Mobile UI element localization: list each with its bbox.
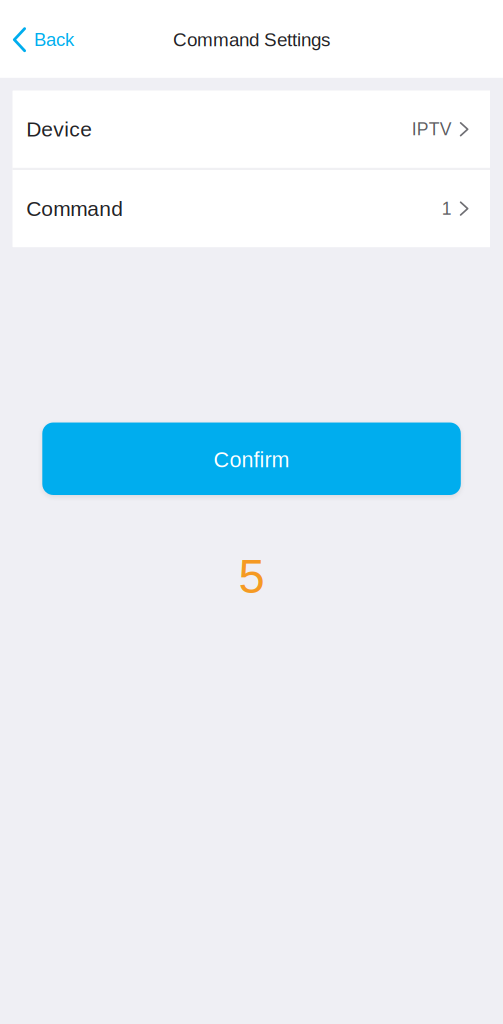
button[interactable]: Device xyxy=(13,91,490,168)
button[interactable]: Back xyxy=(0,0,84,78)
staticText: Confirm xyxy=(214,448,290,472)
staticText: Command Settings xyxy=(173,29,330,50)
staticText: IPTV xyxy=(412,119,452,139)
staticText: Command xyxy=(26,197,123,220)
staticText: Back xyxy=(34,29,74,50)
button[interactable]: Command xyxy=(13,170,490,247)
staticText: 1 xyxy=(442,199,452,218)
button[interactable]: Confirm xyxy=(42,422,461,495)
staticText: Device xyxy=(26,117,92,141)
staticText: 5 xyxy=(238,550,264,603)
